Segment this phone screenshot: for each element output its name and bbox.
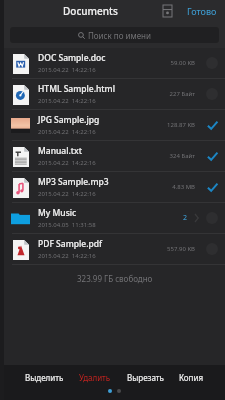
staticText: MP3 Sample.mp3: [38, 176, 109, 188]
staticText: 2: [183, 213, 188, 223]
button[interactable]: Копия: [176, 369, 207, 386]
staticText: 227 Байт: [169, 90, 195, 98]
staticText: Выделить: [25, 372, 64, 383]
button[interactable]: DOC Sample.doc: [4, 48, 225, 78]
staticText: 557.90 KB: [167, 245, 195, 253]
staticText: 2015.04.22 14:22:16: [38, 159, 96, 167]
button[interactable]: Поиск по имени: [10, 27, 219, 43]
button[interactable]: MP3 Sample.mp3: [4, 172, 225, 202]
button[interactable]: My Music: [4, 203, 225, 233]
staticText: 2015.04.22 14:22:16: [38, 190, 96, 198]
staticText: 2015.04.05 11:31:58: [38, 221, 96, 229]
button[interactable]: JPG Sample.jpg: [4, 110, 225, 140]
button[interactable]: Selected: [205, 180, 219, 194]
staticText: My Music: [38, 207, 77, 219]
staticText: 324 Байт: [169, 152, 195, 160]
button[interactable]: Not selected: [205, 211, 219, 225]
staticText: 2015.04.22 14:22:16: [38, 66, 96, 74]
button[interactable]: Not selected: [205, 87, 219, 101]
button[interactable]: Вырезать: [124, 369, 167, 386]
staticText: DOC Sample.doc: [38, 52, 106, 64]
staticText: Поиск по имени: [88, 30, 151, 41]
button[interactable]: Удалить: [76, 369, 114, 386]
staticText: 2015.04.22 14:22:16: [38, 97, 96, 105]
button[interactable]: Change view: [157, 1, 177, 21]
button[interactable]: PDF Sample.pdf: [4, 234, 225, 264]
staticText: Удалить: [79, 372, 111, 383]
button[interactable]: Selected: [205, 149, 219, 163]
staticText: Manual.txt: [38, 145, 82, 157]
button[interactable]: Not selected: [205, 242, 219, 256]
button[interactable]: HTML Sample.html: [4, 79, 225, 109]
staticText: Documents: [63, 4, 118, 18]
staticText: JPG Sample.jpg: [38, 114, 100, 126]
staticText: 2015.04.22 14:22:16: [38, 128, 96, 136]
staticText: 2015.04.22 14:22:16: [38, 252, 96, 260]
staticText: HTML Sample.html: [38, 83, 115, 95]
button[interactable]: Not selected: [205, 56, 219, 70]
staticText: Готово: [187, 5, 217, 17]
staticText: Копия: [179, 372, 204, 383]
staticText: 59.00 KB: [170, 59, 195, 67]
button[interactable]: Выделить: [22, 369, 67, 386]
button[interactable]: Manual.txt: [4, 141, 225, 171]
staticText: 128.87 KB: [167, 121, 195, 129]
staticText: Вырезать: [127, 372, 164, 383]
button[interactable]: Selected: [205, 118, 219, 132]
staticText: 4.83 MB: [172, 183, 195, 191]
button[interactable]: Готово: [187, 5, 217, 17]
staticText: PDF Sample.pdf: [38, 238, 103, 250]
staticText: 323.99 ГБ свободно: [77, 273, 153, 284]
